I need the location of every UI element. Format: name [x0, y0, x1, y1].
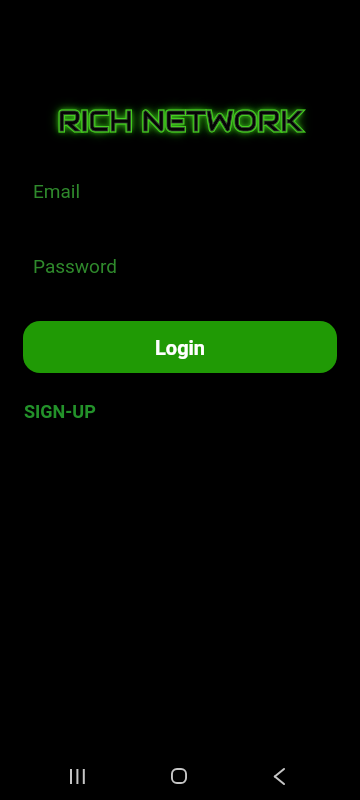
button[interactable]: Back: [239, 752, 319, 800]
button[interactable]: SIGN-UP: [24, 401, 96, 422]
staticText: RICH NETWORK: [58, 104, 303, 139]
staticText: RICH NETWORK: [58, 104, 303, 139]
button[interactable]: Home: [138, 752, 219, 800]
staticText: Password: [33, 255, 117, 277]
staticText: SIGN-UP: [24, 401, 96, 422]
staticText: RICH NETWORK: [58, 104, 303, 139]
staticText: RICH NETWORK: [58, 104, 303, 139]
staticText: Login: [155, 336, 206, 359]
button[interactable]: Recent apps: [37, 752, 117, 800]
staticText: RICH NETWORK: [58, 104, 303, 139]
staticText: Email: [33, 180, 81, 202]
button[interactable]: Login: [23, 321, 337, 373]
staticText: RICH NETWORK: [58, 104, 303, 139]
